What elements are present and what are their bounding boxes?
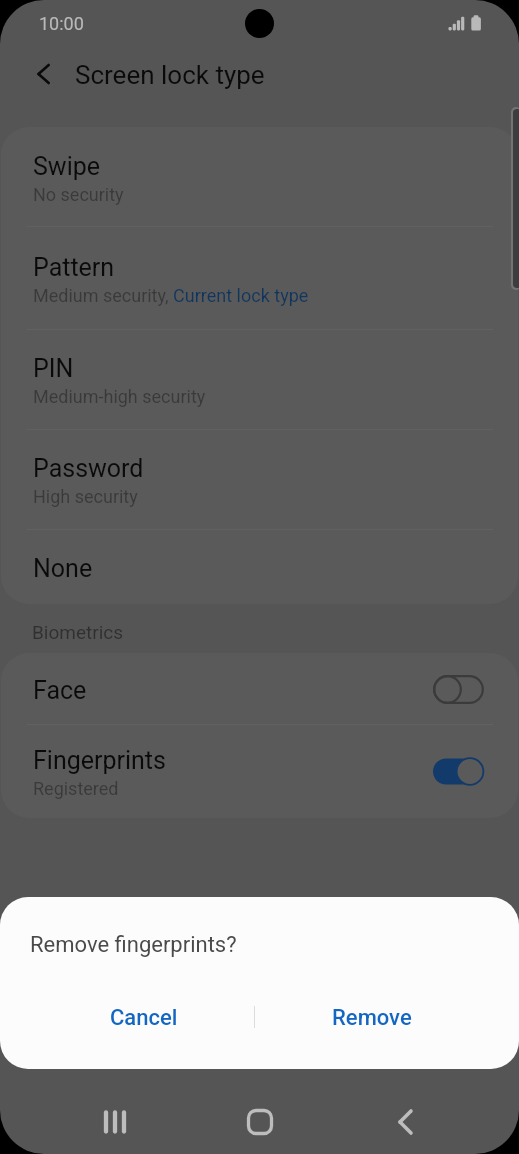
staticText: Registered	[33, 778, 119, 799]
staticText: None	[33, 554, 93, 583]
staticText: PIN	[33, 354, 74, 383]
staticText: Cancel	[110, 1005, 178, 1031]
staticText: 10:00	[39, 13, 84, 34]
button[interactable]: Navigate up	[23, 53, 65, 95]
button[interactable]: Recent apps	[81, 1088, 149, 1154]
staticText: Swipe	[33, 152, 101, 181]
button[interactable]	[1, 226, 518, 329]
staticText: Password	[33, 454, 144, 483]
staticText: High security	[33, 486, 138, 507]
staticText: Remove fingerprints?	[30, 932, 237, 958]
staticText: Medium-high security	[33, 386, 206, 407]
button[interactable]	[1, 127, 518, 226]
staticText: Biometrics	[32, 621, 124, 643]
staticText: Pattern	[33, 253, 115, 282]
staticText: Medium security, Current lock type	[33, 285, 309, 306]
button[interactable]: Home	[226, 1088, 294, 1154]
other: Off	[433, 675, 484, 704]
button[interactable]: Back	[371, 1088, 439, 1154]
staticText: Fingerprints	[33, 746, 166, 775]
button[interactable]	[1, 653, 518, 724]
button[interactable]	[1, 429, 518, 529]
staticText: Remove	[332, 1005, 412, 1031]
staticText: Face	[33, 676, 87, 705]
staticText: No security	[33, 184, 124, 205]
button[interactable]: Cancel	[41, 987, 246, 1049]
button[interactable]	[1, 329, 518, 429]
staticText: Screen lock type	[75, 60, 265, 90]
button[interactable]	[1, 724, 518, 818]
other: On	[433, 757, 484, 786]
button[interactable]	[1, 529, 518, 604]
button[interactable]: Remove	[269, 987, 474, 1049]
